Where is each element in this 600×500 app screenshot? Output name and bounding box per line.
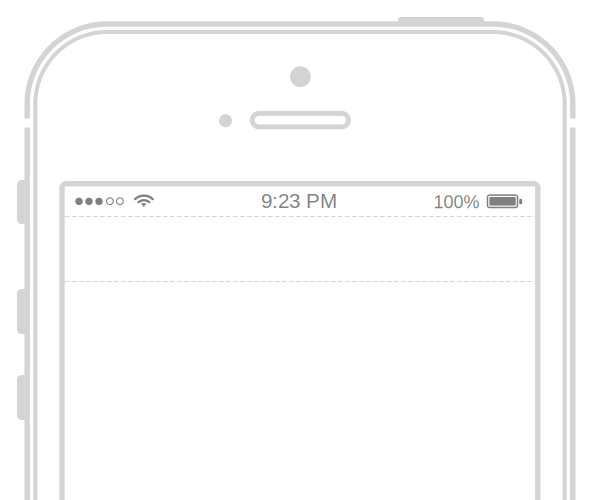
button[interactable]: Sleep Wake button: [0, 0, 600, 500]
staticText: 9:23 PM: [261, 189, 337, 212]
button[interactable]: Volume down: [0, 0, 600, 500]
button[interactable]: Volume up: [0, 0, 600, 500]
button[interactable]: Ring Silent switch: [0, 0, 600, 500]
staticText: 100%: [433, 192, 479, 212]
